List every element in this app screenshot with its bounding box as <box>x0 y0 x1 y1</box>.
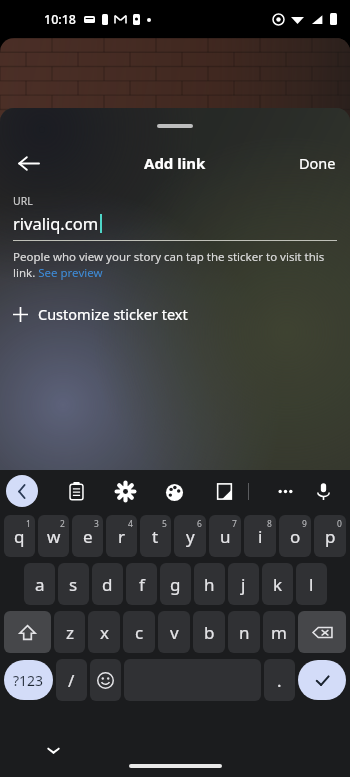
staticText: Done <box>299 153 336 173</box>
button[interactable]: k <box>262 563 293 605</box>
button[interactable]: Emoji <box>90 659 121 701</box>
button[interactable]: n <box>228 611 260 653</box>
staticText: 3 <box>94 518 99 530</box>
button[interactable]: Customize sticker text <box>0 298 350 330</box>
staticText: / <box>68 669 75 692</box>
button[interactable]: o <box>279 515 311 557</box>
button[interactable]: Clipboard <box>57 472 95 510</box>
staticText: Add link <box>144 153 206 173</box>
button[interactable]: p <box>314 515 346 557</box>
staticText: ?123 <box>13 671 44 690</box>
button[interactable]: More options <box>266 472 304 510</box>
button[interactable]: z <box>54 611 85 653</box>
button[interactable]: j <box>228 563 259 605</box>
button[interactable]: v <box>158 611 190 653</box>
staticText: 10:18 <box>44 11 77 28</box>
staticText: 8 <box>267 518 272 530</box>
staticText: k <box>273 573 283 596</box>
button[interactable]: ?123 <box>4 660 53 700</box>
button[interactable]: t <box>140 515 171 557</box>
button[interactable]: s <box>58 563 89 605</box>
staticText: t <box>152 525 159 548</box>
staticText: q <box>14 525 25 548</box>
button[interactable]: y <box>174 515 206 557</box>
button[interactable]: h <box>194 563 225 605</box>
staticText: v <box>170 621 179 644</box>
staticText: a <box>35 573 45 596</box>
staticText: . <box>277 669 282 692</box>
button[interactable]: g <box>160 563 191 605</box>
button[interactable]: One-handed mode <box>205 472 243 510</box>
button[interactable]: Done <box>293 147 342 179</box>
staticText: w <box>47 525 61 548</box>
staticText: c <box>135 621 144 644</box>
button[interactable]: r <box>106 515 137 557</box>
button[interactable]: u <box>209 515 241 557</box>
staticText: f <box>139 573 145 596</box>
staticText: p <box>325 525 336 548</box>
staticText: Customize sticker text <box>38 304 188 324</box>
button[interactable]: Voice input <box>304 472 342 510</box>
staticText: 4 <box>128 518 133 530</box>
staticText: j <box>241 573 246 596</box>
button[interactable]: a <box>24 563 55 605</box>
button[interactable]: b <box>193 611 225 653</box>
staticText: l <box>309 573 314 596</box>
button[interactable]: Theme <box>155 472 193 510</box>
staticText: URL <box>13 194 33 208</box>
button[interactable]: m <box>263 611 295 653</box>
staticText: i <box>258 525 263 548</box>
button[interactable]: Settings <box>106 472 144 510</box>
staticText: People who view your story can tap the s… <box>13 249 337 281</box>
staticText: 6 <box>197 518 202 530</box>
staticText: e <box>83 525 93 548</box>
button[interactable]: Hide keyboard <box>38 735 68 765</box>
button[interactable]: Back <box>8 143 48 183</box>
button[interactable]: e <box>72 515 103 557</box>
button[interactable]: Backspace <box>298 611 346 653</box>
button[interactable]: / <box>56 659 87 701</box>
button[interactable]: Enter <box>298 660 346 700</box>
staticText: rivaliq.com <box>13 212 99 234</box>
button[interactable]: i <box>244 515 276 557</box>
button[interactable]: . <box>264 659 295 701</box>
staticText: s <box>69 573 78 596</box>
staticText: 5 <box>162 518 167 530</box>
staticText: g <box>170 573 181 596</box>
button[interactable]: Previous <box>6 475 38 507</box>
staticText: m <box>271 621 287 644</box>
button[interactable]: d <box>92 563 123 605</box>
staticText: x <box>100 621 109 644</box>
staticText: u <box>220 525 231 548</box>
staticText: d <box>102 573 113 596</box>
staticText: 1 <box>26 518 31 530</box>
button[interactable]: c <box>123 611 155 653</box>
button[interactable]: Shift <box>4 611 51 653</box>
button[interactable]: l <box>296 563 327 605</box>
staticText: 7 <box>232 518 237 530</box>
staticText: z <box>66 621 74 644</box>
button[interactable]: f <box>126 563 157 605</box>
staticText: b <box>204 621 215 644</box>
staticText: r <box>118 525 126 548</box>
staticText: h <box>204 573 215 596</box>
staticText: 0 <box>337 518 342 530</box>
button[interactable]: w <box>38 515 69 557</box>
staticText: o <box>290 525 301 548</box>
staticText: y <box>186 525 195 548</box>
staticText: 9 <box>302 518 307 530</box>
button[interactable]: q <box>4 515 35 557</box>
staticText: 2 <box>60 518 65 530</box>
button[interactable]: x <box>88 611 120 653</box>
staticText: n <box>239 621 250 644</box>
